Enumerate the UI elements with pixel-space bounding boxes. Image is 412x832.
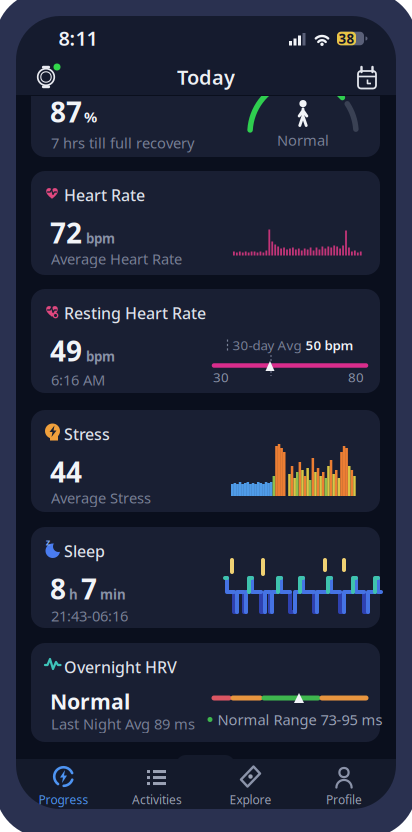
staticText: Progress bbox=[38, 791, 88, 807]
staticText: Overnight HRV bbox=[64, 656, 177, 678]
staticText: 8:11 bbox=[58, 25, 97, 51]
staticText: bpm bbox=[86, 229, 115, 247]
staticText: 72 bbox=[50, 214, 82, 251]
staticText: Sleep bbox=[64, 540, 105, 562]
staticText: Normal bbox=[277, 130, 329, 150]
staticText: Resting Heart Rate bbox=[64, 302, 206, 324]
staticText: 21:43-06:16 bbox=[51, 606, 128, 625]
staticText: 8 bbox=[50, 570, 66, 607]
button[interactable]: Heart Rate bbox=[31, 171, 380, 275]
staticText: Activities bbox=[132, 791, 182, 807]
staticText: 50 bpm bbox=[305, 336, 353, 354]
staticText: 6:16 AM bbox=[51, 370, 105, 389]
button[interactable]: Profile bbox=[299, 762, 389, 810]
button[interactable]: Normal bbox=[31, 96, 380, 157]
staticText: 30 bbox=[213, 368, 229, 386]
button[interactable]: Calendar bbox=[344, 47, 390, 93]
staticText: % bbox=[84, 107, 97, 126]
button[interactable]: z bbox=[31, 527, 380, 628]
staticText: Stress bbox=[64, 423, 110, 445]
staticText: Profile bbox=[326, 791, 362, 807]
button[interactable]: Progress bbox=[18, 762, 108, 810]
button[interactable]: Explore bbox=[205, 762, 295, 810]
staticText: 80 bbox=[348, 368, 364, 386]
button[interactable]: Stress bbox=[31, 410, 380, 512]
staticText: Normal bbox=[50, 687, 130, 715]
staticText: h bbox=[69, 585, 78, 603]
staticText: 44 bbox=[50, 453, 82, 490]
staticText: Normal Range 73-95 ms bbox=[217, 710, 382, 729]
staticText: z bbox=[46, 536, 51, 548]
staticText: 38 bbox=[338, 30, 354, 47]
staticText: Explore bbox=[229, 791, 271, 807]
staticText: 87 bbox=[50, 93, 82, 130]
staticText: 7 hrs till full recovery bbox=[51, 133, 194, 152]
staticText: Average Stress bbox=[51, 488, 151, 507]
staticText: Today bbox=[177, 64, 235, 90]
staticText: Heart Rate bbox=[64, 184, 145, 206]
staticText: 49 bbox=[50, 332, 82, 369]
button[interactable]: Activities bbox=[112, 762, 202, 810]
button[interactable]: Overnight HRV bbox=[31, 643, 380, 742]
staticText: Average Heart Rate bbox=[51, 249, 182, 268]
staticText: min bbox=[100, 585, 126, 603]
staticText: bpm bbox=[86, 347, 115, 365]
staticText: 30-day Avg bbox=[232, 336, 301, 354]
staticText: 7 bbox=[81, 570, 97, 607]
button[interactable]: Resting Heart Rate bbox=[31, 289, 380, 393]
staticText: Last Night Avg 89 ms bbox=[51, 714, 195, 733]
button[interactable]: Connected device bbox=[23, 54, 69, 100]
